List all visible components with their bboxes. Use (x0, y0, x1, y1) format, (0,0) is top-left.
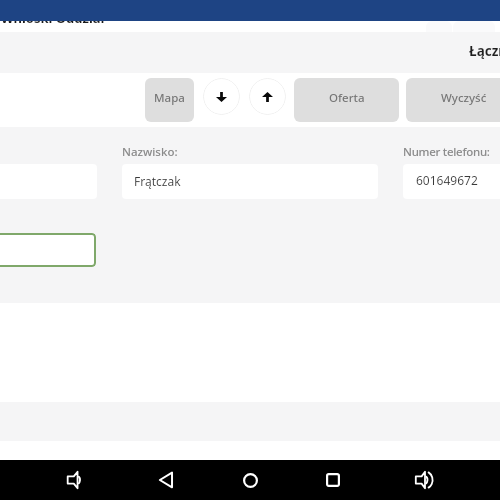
button[interactable]: Sort descending (203, 78, 240, 115)
staticText: 601649672 (416, 172, 478, 188)
button[interactable]: Recent apps (313, 460, 353, 500)
button[interactable]: Sort ascending (249, 78, 286, 115)
button[interactable]: Oferta (294, 78, 399, 122)
staticText: Numer telefonu: (403, 144, 490, 160)
button[interactable]: Frątczak (122, 164, 378, 199)
staticText: Nazwisko: (122, 144, 178, 160)
staticText: Mapa (154, 90, 185, 106)
button[interactable]: Mapa (145, 78, 194, 122)
staticText: Frątczak (134, 173, 181, 189)
button[interactable]: 601649672 (403, 164, 500, 199)
button[interactable]: Volume up (405, 460, 445, 500)
button[interactable]: Volume down (55, 460, 95, 500)
button[interactable]: Wyczyść (406, 78, 500, 122)
button[interactable]: Back (146, 460, 186, 500)
button[interactable]: Focused field (0, 233, 96, 267)
staticText: Wyczyść (441, 90, 487, 106)
staticText: Wnioski Oddział (1, 9, 105, 27)
button[interactable]: Home (230, 460, 270, 500)
staticText: Oferta (329, 90, 365, 106)
staticText: Łączn (469, 42, 500, 60)
